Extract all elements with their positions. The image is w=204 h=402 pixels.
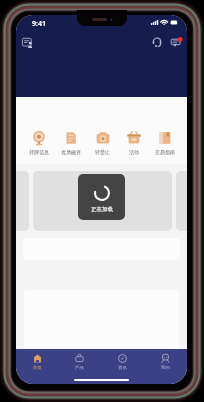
button[interactable]: Messages: [167, 33, 185, 51]
staticText: 转受让: [95, 149, 110, 155]
button[interactable]: Identity card: [18, 33, 36, 51]
staticText: 9:41: [32, 19, 46, 29]
button[interactable]: 我的: [144, 354, 187, 384]
button[interactable]: 首页: [16, 354, 58, 384]
staticText: 优质融资: [61, 149, 81, 155]
staticText: 正在加载: [91, 206, 113, 213]
button[interactable]: 挂牌信息: [23, 130, 55, 155]
button[interactable]: 优质融资: [55, 130, 87, 155]
button[interactable]: 活动: [118, 130, 149, 155]
staticText: 产品: [75, 365, 84, 371]
button[interactable]: [33, 171, 172, 231]
staticText: 资讯: [118, 365, 127, 371]
staticText: 挂牌信息: [29, 149, 49, 155]
button[interactable]: 交易指南: [149, 130, 180, 155]
staticText: 我的: [161, 365, 170, 371]
button[interactable]: Customer service: [148, 33, 166, 51]
staticText: 活动: [129, 149, 139, 155]
staticText: 交易指南: [155, 149, 175, 155]
button[interactable]: 转受让: [87, 130, 118, 155]
button[interactable]: 资讯: [101, 354, 144, 384]
button[interactable]: 产品: [58, 354, 101, 384]
staticText: 首页: [33, 365, 42, 371]
